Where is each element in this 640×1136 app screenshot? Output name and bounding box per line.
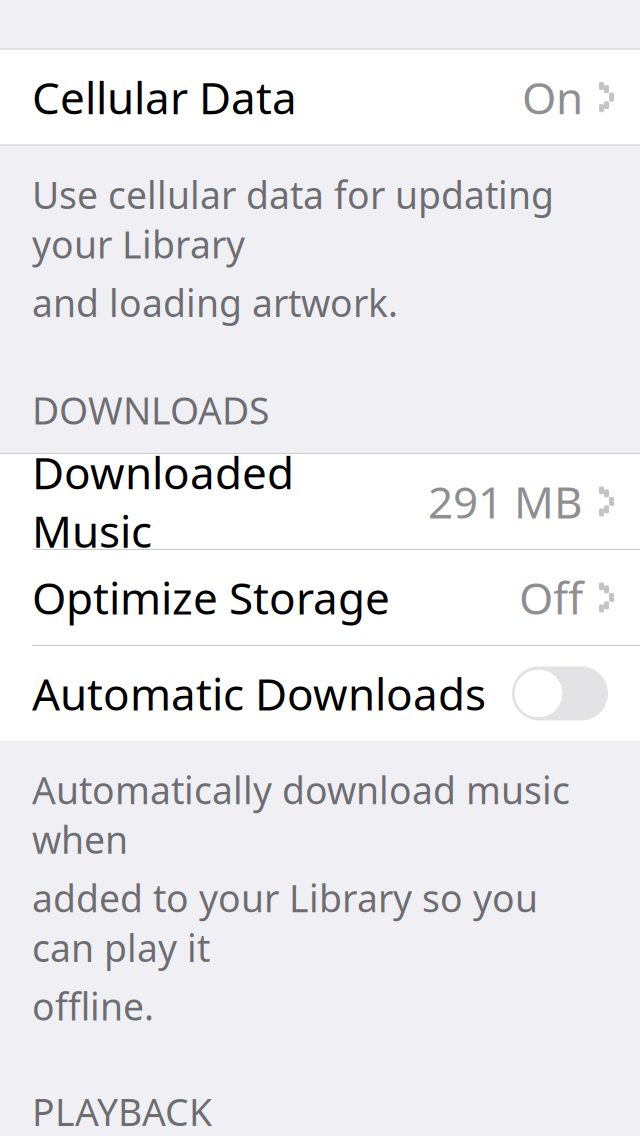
staticText: Cellular Data <box>32 68 297 126</box>
staticText: DOWNLOADS <box>32 385 269 435</box>
staticText: and loading artwork. <box>32 278 398 327</box>
button[interactable]: Downloaded Music <box>0 454 640 549</box>
staticText: 291 MB <box>428 472 583 531</box>
button[interactable]: Automatic Downloads <box>0 646 640 741</box>
staticText: Optimize Storage <box>32 568 390 627</box>
staticText: added to your Library so you can play it <box>32 873 538 972</box>
staticText: offline. <box>32 981 154 1031</box>
staticText: PLAYBACK <box>32 1087 212 1136</box>
staticText: Automatic Downloads <box>32 664 486 723</box>
staticText: On <box>522 68 583 126</box>
button[interactable]: Optimize Storage <box>0 550 640 645</box>
button[interactable]: Cellular Data <box>0 50 640 145</box>
staticText: Off <box>519 568 583 627</box>
staticText: Use cellular data for updating your Libr… <box>32 170 554 269</box>
staticText: Automatically download music when <box>32 765 570 864</box>
staticText: Downloaded Music <box>32 443 294 560</box>
